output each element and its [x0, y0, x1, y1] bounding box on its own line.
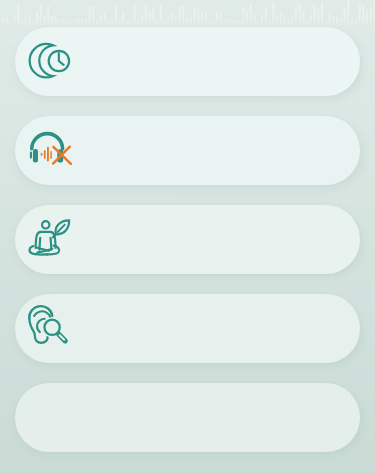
- button[interactable]: Sleep timer: [15, 27, 360, 96]
- button[interactable]: Noise cancelling: [15, 116, 360, 185]
- button[interactable]: More: [15, 383, 360, 452]
- button[interactable]: Hearing test: [15, 294, 360, 363]
- button[interactable]: Mindfulness: [15, 205, 360, 274]
